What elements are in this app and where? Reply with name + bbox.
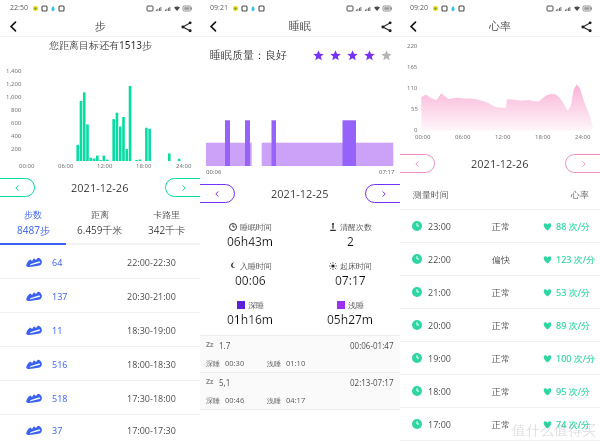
staticText: 01:10	[286, 358, 306, 368]
staticText: 深睡	[206, 359, 220, 368]
staticText: 123 次/分	[556, 253, 596, 265]
button[interactable]: 21:00	[400, 276, 600, 308]
staticText: 浅睡	[348, 300, 364, 310]
staticText: 2	[347, 233, 354, 249]
button[interactable]: Next day	[365, 184, 400, 203]
staticText: 正常	[492, 353, 510, 364]
staticText: 卡路里	[153, 209, 180, 220]
button[interactable]: 距离	[66, 203, 133, 243]
staticText: 22:00-22:30	[127, 256, 176, 268]
button[interactable]: Share	[377, 17, 395, 35]
staticText: 12:00	[97, 162, 113, 170]
staticText: 您距离目标还有1513步	[49, 38, 152, 52]
staticText: 2021-12-25	[271, 186, 329, 201]
staticText: 89 次/分	[556, 319, 590, 331]
staticText: 09:20	[410, 3, 428, 13]
staticText: 正常	[492, 419, 510, 430]
staticText: Zz	[206, 377, 214, 387]
staticText: 17:30-18:00	[127, 392, 176, 404]
button[interactable]: Back	[204, 17, 222, 35]
staticText: 12:00	[495, 133, 511, 141]
button[interactable]: Next day	[565, 154, 600, 173]
button[interactable]: 37	[0, 415, 200, 445]
staticText: 起床时间	[340, 261, 372, 271]
staticText: 06:00	[58, 162, 74, 170]
staticText: 20:30-21:00	[127, 290, 176, 302]
staticText: 心率	[571, 189, 589, 200]
staticText: 516	[52, 358, 68, 370]
staticText: 18:00	[535, 133, 551, 141]
staticText: 浅睡	[267, 359, 281, 368]
staticText: 偏快	[492, 254, 510, 265]
staticText: 88 次/分	[556, 220, 590, 232]
button[interactable]: 卡路里	[133, 203, 200, 243]
staticText: 20:00	[428, 319, 452, 331]
staticText: 100 次/分	[556, 352, 596, 364]
staticText: 正常	[492, 386, 510, 397]
button[interactable]: 步数	[0, 203, 66, 243]
staticText: 07:17	[335, 272, 366, 288]
staticText: 距离	[91, 209, 109, 220]
button[interactable]: Back	[404, 17, 422, 35]
staticText: 22:50	[10, 3, 28, 13]
staticText: 17:00	[428, 418, 452, 430]
staticText: 95 次/分	[556, 385, 590, 397]
button[interactable]: 516	[0, 347, 200, 380]
button[interactable]: 18:00	[400, 375, 600, 407]
staticText: 00:46	[225, 395, 245, 405]
button[interactable]: Previous day	[0, 178, 35, 197]
staticText: 正常	[492, 287, 510, 298]
staticText: 1,000	[6, 93, 22, 101]
button[interactable]: Next day	[165, 178, 200, 197]
button[interactable]: Previous day	[200, 184, 235, 203]
button[interactable]: 64	[0, 245, 200, 278]
button[interactable]: 19:00	[400, 342, 600, 374]
staticText: 00:06	[206, 168, 222, 176]
button[interactable]: 22:00	[400, 243, 600, 275]
staticText: 00:30	[225, 358, 245, 368]
staticText: 37	[52, 424, 63, 436]
button[interactable]: 17:00	[400, 408, 600, 440]
staticText: 步	[95, 19, 106, 33]
staticText: 2021-12-26	[471, 156, 529, 171]
staticText: 21:00	[428, 286, 452, 298]
button[interactable]: Previous day	[400, 154, 435, 173]
staticText: 深睡	[248, 300, 264, 310]
staticText: 值什么值得买	[512, 422, 596, 440]
staticText: 400	[11, 132, 22, 140]
button[interactable]: Zz	[200, 372, 400, 409]
staticText: 06:00	[455, 133, 471, 141]
staticText: 00:06-01:47	[350, 340, 394, 351]
button[interactable]: Back	[4, 17, 22, 35]
staticText: 6.459千米	[77, 223, 123, 237]
staticText: Zz	[206, 340, 214, 350]
button[interactable]: Zz	[200, 335, 400, 372]
staticText: 深睡	[206, 396, 220, 405]
button[interactable]: 518	[0, 381, 200, 414]
staticText: 测量时间	[413, 189, 449, 200]
staticText: 睡眠时间	[240, 222, 272, 232]
staticText: 18:00	[428, 385, 452, 397]
button[interactable]: 20:00	[400, 309, 600, 341]
staticText: 浅睡	[267, 396, 281, 405]
button[interactable]: Share	[177, 17, 195, 35]
staticText: 睡眠质量：良好	[210, 48, 287, 62]
staticText: 0	[414, 126, 418, 134]
button[interactable]: 11	[0, 313, 200, 346]
staticText: 02:13-07:17	[350, 377, 394, 388]
button[interactable]: 137	[0, 279, 200, 312]
staticText: 入睡时间	[240, 261, 272, 271]
button[interactable]: 23:00	[400, 210, 600, 242]
staticText: 19:00	[428, 352, 452, 364]
staticText: 17:00-17:30	[127, 424, 176, 436]
staticText: 1,400	[6, 67, 22, 75]
staticText: 165	[407, 63, 418, 71]
staticText: 正常	[492, 320, 510, 331]
staticText: 清醒次数	[340, 222, 372, 232]
staticText: 1,200	[6, 80, 22, 88]
button[interactable]: Share	[577, 17, 595, 35]
staticText: 800	[11, 106, 22, 114]
staticText: 18:00	[136, 162, 152, 170]
staticText: 600	[11, 119, 22, 127]
staticText: 正常	[492, 221, 510, 232]
